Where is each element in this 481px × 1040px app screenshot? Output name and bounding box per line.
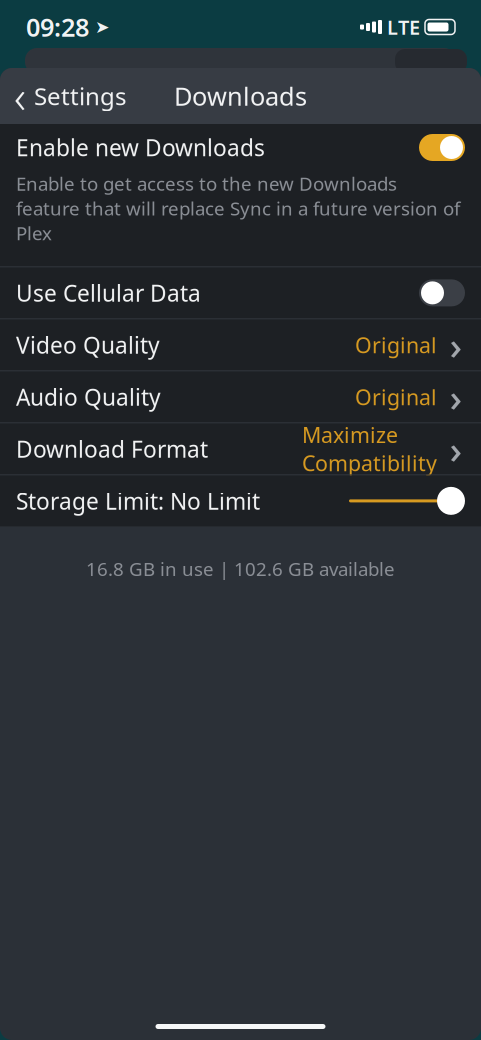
staticText: › — [449, 319, 462, 370]
button[interactable]: Download Format — [0, 423, 481, 474]
button[interactable]: Audio Quality — [0, 371, 481, 422]
staticText: Download Format — [16, 434, 208, 464]
staticText: Original — [355, 383, 437, 411]
button[interactable]: Use Cellular Data — [0, 267, 481, 318]
staticText: Audio Quality — [16, 382, 161, 412]
staticText: Original — [355, 331, 437, 359]
button[interactable]: Video Quality — [0, 319, 481, 370]
staticText: Settings — [34, 80, 126, 112]
staticText: LTE — [382, 14, 425, 40]
staticText: Downloads — [174, 79, 307, 113]
staticText: 16.8 GB in use | 102.6 GB available — [86, 556, 395, 581]
staticText: ➤ — [89, 17, 110, 37]
staticText: Maximize Compatibility — [302, 420, 437, 477]
staticText: Video Quality — [16, 330, 160, 360]
button[interactable]: ‹ — [0, 56, 126, 136]
button[interactable]: Enable new Downloads — [0, 124, 481, 266]
staticText: Storage Limit: No Limit — [16, 486, 260, 516]
staticText: 09:28 — [26, 10, 89, 44]
staticText: › — [449, 371, 462, 422]
staticText: Enable new Downloads — [16, 132, 265, 162]
staticText: Enable to get access to the new Download… — [16, 171, 460, 245]
staticText: ‹ — [14, 66, 26, 126]
staticText: Use Cellular Data — [16, 278, 201, 308]
staticText: › — [449, 423, 462, 474]
